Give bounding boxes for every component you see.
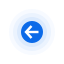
button[interactable]: Back bbox=[21, 21, 43, 43]
